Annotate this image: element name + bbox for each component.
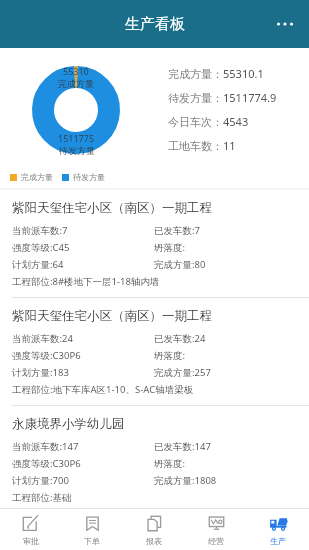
staticText: 紫阳天玺住宅小区（南区）一期工程 <box>12 308 212 324</box>
staticText: 工程部位:8#楼地下一层1-18轴内墙 <box>12 275 160 288</box>
button[interactable]: More options <box>267 6 303 42</box>
staticText: 计划方量:700 <box>12 474 69 487</box>
staticText: 当前派车数:147 <box>12 440 79 453</box>
staticText: 已发车数:24 <box>154 332 206 345</box>
button[interactable]: 永康境界小学幼儿园 <box>0 406 309 508</box>
staticText: 完成方量:257 <box>154 366 211 379</box>
staticText: 55310 <box>63 65 89 77</box>
staticText: 审批 <box>23 536 39 546</box>
staticText: 1511775 <box>58 132 95 144</box>
staticText: 完成方量 <box>58 78 94 89</box>
staticText: 工程部位:基础 <box>12 491 72 504</box>
button[interactable]: 经营 <box>185 509 247 550</box>
button[interactable]: 紫阳天玺住宅小区（南区）一期工程 <box>0 298 309 405</box>
staticText: 11 <box>223 138 236 153</box>
staticText: 完成方量:1808 <box>154 474 217 487</box>
staticText: 待发方量 <box>59 145 95 156</box>
staticText: 经营 <box>208 536 224 546</box>
staticText: 生产看板 <box>125 15 185 34</box>
staticText: 生产 <box>270 536 286 546</box>
staticText: 坍落度: <box>154 457 186 470</box>
staticText: 已发车数:7 <box>154 224 200 237</box>
staticText: 当前派车数:24 <box>12 332 73 345</box>
staticText: 坍落度: <box>154 349 186 362</box>
staticText: 工地车数： <box>168 139 223 153</box>
staticText: 55310.1 <box>223 66 264 81</box>
staticText: 报表 <box>146 536 162 546</box>
button[interactable]: 审批 <box>0 509 61 550</box>
staticText: 下单 <box>84 536 100 546</box>
staticText: 永康境界小学幼儿园 <box>12 416 125 432</box>
button[interactable]: 生产 <box>247 509 309 550</box>
staticText: 强度等级:C30P6 <box>12 349 81 362</box>
staticText: 计划方量:183 <box>12 366 69 379</box>
staticText: 工程部位:地下车库A区1-10、S-AC轴墙梁板 <box>12 383 194 396</box>
staticText: 强度等级:C45 <box>12 241 70 254</box>
staticText: 强度等级:C30P6 <box>12 457 81 470</box>
staticText: 完成方量： <box>168 67 223 81</box>
staticText: 待发方量： <box>168 91 223 105</box>
staticText: 紫阳天玺住宅小区（南区）一期工程 <box>12 200 212 216</box>
staticText: 今日车次： <box>168 115 223 129</box>
staticText: 4543 <box>223 114 249 129</box>
staticText: 1511774.9 <box>223 90 277 105</box>
staticText: 坍落度: <box>154 241 186 254</box>
staticText: 待发方量 <box>73 172 105 182</box>
staticText: 计划方量:64 <box>12 258 64 271</box>
staticText: 已发车数:147 <box>154 440 211 453</box>
button[interactable]: 下单 <box>61 509 123 550</box>
staticText: 当前派车数:7 <box>12 224 68 237</box>
button[interactable]: 紫阳天玺住宅小区（南区）一期工程 <box>0 190 309 297</box>
button[interactable]: 报表 <box>123 509 185 550</box>
staticText: 完成方量:80 <box>154 258 206 271</box>
staticText: 完成方量 <box>21 172 53 182</box>
